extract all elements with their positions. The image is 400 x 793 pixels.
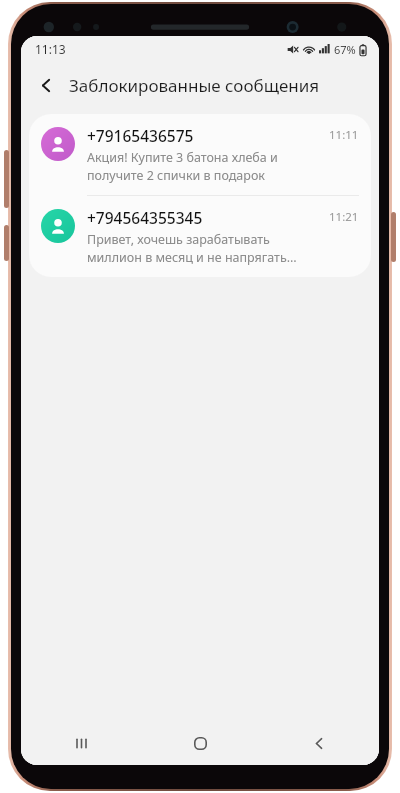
- button[interactable]: Недавние: [21, 721, 141, 765]
- staticText: 67%: [334, 42, 356, 57]
- staticText: +79165436575: [87, 125, 194, 146]
- button[interactable]: +794564355345: [29, 196, 371, 277]
- button[interactable]: Назад: [27, 66, 65, 104]
- staticText: Заблокированные сообщения: [69, 74, 320, 97]
- staticText: 11:21: [329, 209, 359, 225]
- staticText: 11:11: [329, 127, 359, 143]
- staticText: миллион в месяц и не напрягать…: [87, 249, 297, 266]
- staticText: получите 2 спички в подарок: [87, 167, 265, 184]
- staticText: Акция! Купите 3 батона хлеба и: [87, 149, 278, 166]
- staticText: Привет, хочешь зарабатывать: [87, 231, 270, 248]
- staticText: +794564355345: [87, 207, 203, 228]
- button[interactable]: +79165436575: [29, 114, 371, 195]
- button[interactable]: Назад: [260, 721, 379, 765]
- staticText: 11:13: [35, 41, 66, 57]
- button[interactable]: Домой: [141, 721, 260, 765]
